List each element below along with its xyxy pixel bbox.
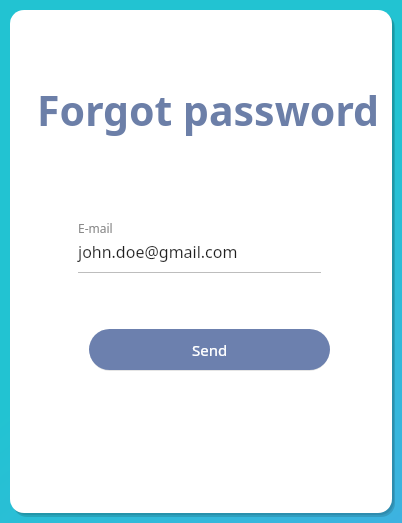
- staticText: Forgot password: [37, 82, 382, 138]
- staticText: john.doe@gmail.com: [78, 241, 238, 263]
- staticText: Send: [192, 340, 228, 360]
- button[interactable]: Send: [89, 329, 330, 370]
- staticText: E-mail: [78, 220, 113, 236]
- button[interactable]: E-mail: [78, 220, 321, 273]
